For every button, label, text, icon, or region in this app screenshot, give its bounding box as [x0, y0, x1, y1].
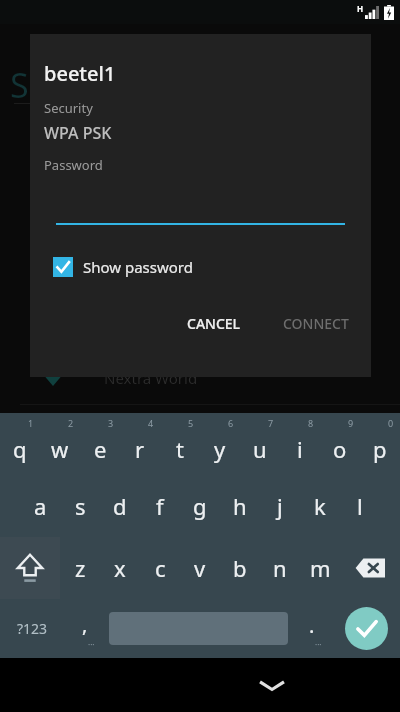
button[interactable]: 2 [40, 413, 80, 475]
staticText: H [357, 3, 364, 14]
staticText: . [309, 612, 315, 639]
staticText: Nextra World [104, 368, 198, 388]
staticText: ··· [315, 639, 322, 650]
button[interactable]: 5 [160, 413, 200, 475]
staticText: 6 [228, 417, 234, 429]
staticText: f [156, 491, 164, 521]
button[interactable]: b [220, 537, 260, 599]
button[interactable]: ?123 [0, 599, 64, 658]
button[interactable]: a [20, 475, 60, 537]
staticText: k [314, 491, 326, 521]
staticText: p [373, 434, 387, 464]
button[interactable]: x [100, 537, 140, 599]
staticText: ?123 [17, 619, 48, 638]
staticText: l [357, 491, 363, 521]
staticText: 5 [188, 417, 194, 429]
button[interactable]: k [300, 475, 340, 537]
staticText: 2 [68, 417, 74, 429]
staticText: i [297, 434, 303, 464]
staticText: m [310, 553, 331, 583]
staticText: 3 [108, 417, 114, 429]
staticText: h [233, 491, 247, 521]
staticText: 9 [348, 417, 354, 429]
staticText: beetel1 [44, 60, 116, 87]
staticText: 7 [268, 417, 274, 429]
button[interactable]: v [180, 537, 220, 599]
staticText: u [253, 434, 267, 464]
staticText: c [155, 553, 166, 583]
staticText: s [75, 491, 86, 521]
button[interactable]: Hide keyboard [72, 658, 400, 712]
button[interactable]: g [180, 475, 220, 537]
button[interactable]: CONNECT [269, 306, 363, 341]
staticText: 1 [28, 417, 34, 429]
button[interactable]: Shift [0, 537, 60, 599]
staticText: CONNECT [283, 314, 349, 333]
staticText: r [135, 434, 145, 464]
button[interactable]: n [260, 537, 300, 599]
staticText: Show password [83, 257, 193, 277]
button[interactable]: l [340, 475, 380, 537]
button[interactable]: 0 [360, 413, 400, 475]
button[interactable]: Comma [64, 599, 106, 658]
staticText: ··· [88, 639, 95, 650]
button[interactable]: 7 [240, 413, 280, 475]
staticText: v [194, 553, 206, 583]
button[interactable] [56, 199, 345, 225]
staticText: g [193, 491, 207, 521]
button[interactable]: z [60, 537, 100, 599]
staticText: y [214, 434, 226, 464]
staticText: n [273, 553, 287, 583]
button[interactable]: h [220, 475, 260, 537]
staticText: a [34, 491, 47, 521]
staticText: o [333, 434, 347, 464]
staticText: e [94, 434, 107, 464]
staticText: b [233, 553, 247, 583]
staticText: d [113, 491, 127, 521]
staticText: WPA PSK [44, 122, 112, 144]
button[interactable]: 8 [280, 413, 320, 475]
staticText: , [82, 611, 88, 638]
staticText: j [277, 491, 283, 521]
staticText: 4 [148, 417, 154, 429]
button[interactable]: CANCEL [173, 306, 255, 341]
staticText: 0 [388, 417, 394, 429]
staticText: 8 [308, 417, 314, 429]
button[interactable]: 9 [320, 413, 360, 475]
button[interactable]: 3 [80, 413, 120, 475]
button[interactable]: s [60, 475, 100, 537]
staticText: Password [44, 156, 103, 174]
button[interactable]: 4 [120, 413, 160, 475]
button[interactable]: Enter [333, 599, 400, 658]
staticText: t [176, 434, 184, 464]
staticText: q [13, 434, 27, 464]
button[interactable]: m [300, 537, 340, 599]
button[interactable]: j [260, 475, 300, 537]
button[interactable]: d [100, 475, 140, 537]
staticText: z [75, 553, 86, 583]
staticText: S [10, 62, 29, 108]
button[interactable]: Backspace [340, 537, 400, 599]
button[interactable]: 6 [200, 413, 240, 475]
staticText: w [51, 434, 69, 464]
button[interactable]: Period [291, 599, 333, 658]
button[interactable]: f [140, 475, 180, 537]
button[interactable]: c [140, 537, 180, 599]
button[interactable]: Show password [53, 252, 193, 282]
staticText: CANCEL [187, 314, 241, 333]
staticText: Security [44, 99, 93, 117]
button[interactable]: 1 [0, 413, 40, 475]
staticText: x [114, 553, 126, 583]
